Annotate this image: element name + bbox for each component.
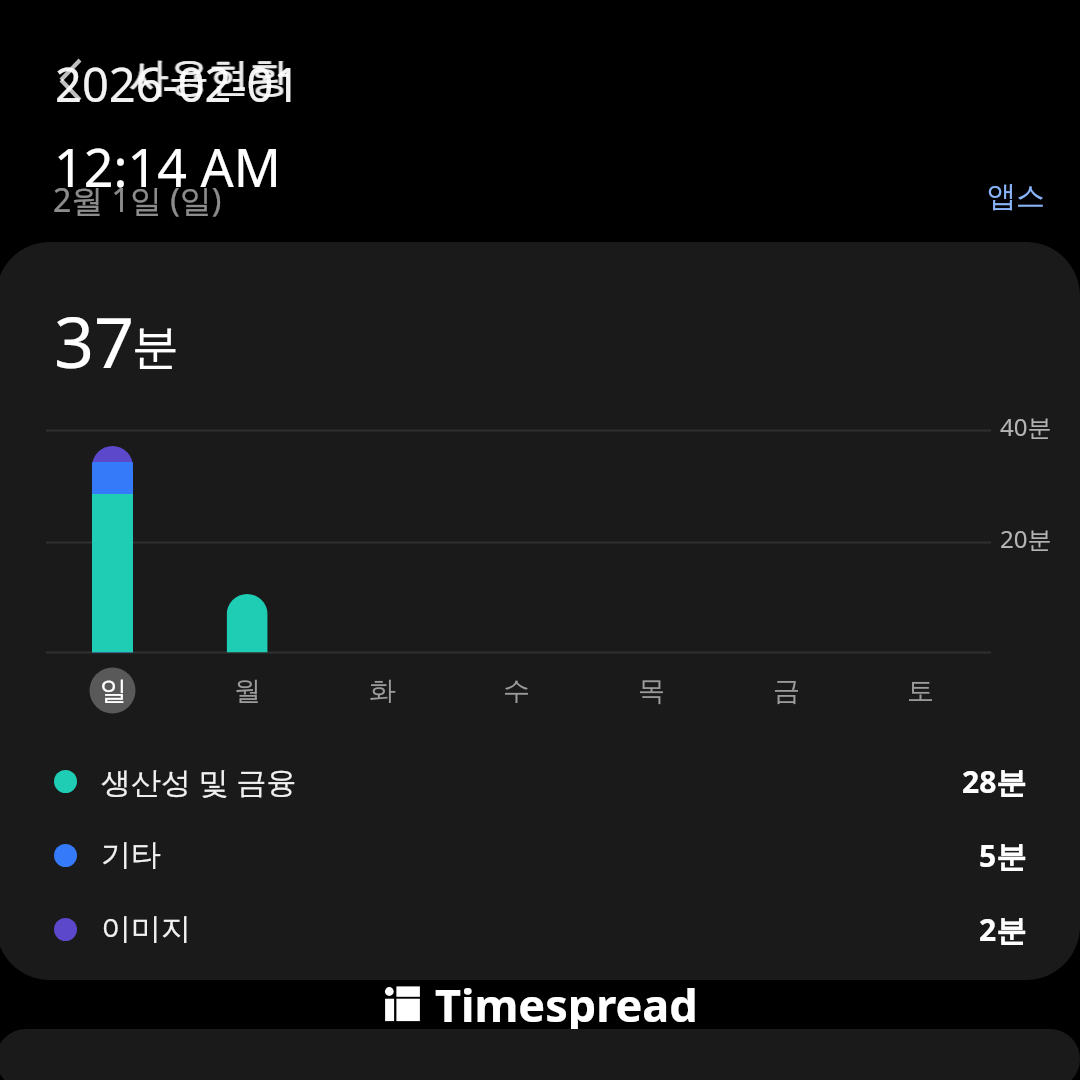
staticText: 이미지 <box>101 910 191 948</box>
button[interactable]: 기타 <box>0 818 1080 892</box>
button[interactable]: 일 <box>85 665 141 717</box>
staticText: 20분 <box>1000 522 1052 555</box>
staticText: 2026-02-01 <box>55 52 301 116</box>
button[interactable]: 화 <box>354 665 410 717</box>
button[interactable]: 이미지 <box>0 892 1080 966</box>
staticText: 5분 <box>979 835 1027 876</box>
staticText: 2월 1일 (일) <box>53 178 222 222</box>
button[interactable]: 월 <box>219 665 275 717</box>
button[interactable]: 앱스 <box>975 168 1057 225</box>
staticText: 일 <box>100 674 127 708</box>
staticText: 화 <box>369 674 396 708</box>
staticText: 사용현황 <box>130 52 290 102</box>
staticText: 수 <box>503 674 530 708</box>
staticText: 28분 <box>962 761 1027 802</box>
staticText: 12:14 AM <box>54 131 281 202</box>
button[interactable]: 목 <box>623 665 679 717</box>
button[interactable]: 토 <box>892 665 948 717</box>
staticText: 37 <box>54 293 135 388</box>
button[interactable]: 금 <box>758 665 814 717</box>
staticText: 기타 <box>101 836 161 874</box>
staticText: 사용현황 <box>129 52 289 102</box>
staticText: 생산성 및 금융 <box>101 761 297 802</box>
staticText: 목 <box>638 674 665 708</box>
staticText: 앱스 <box>987 178 1045 215</box>
staticText: 토 <box>907 674 934 708</box>
staticText: 사용현황 <box>128 52 288 102</box>
button[interactable]: 생산성 및 금융 <box>0 744 1080 818</box>
button[interactable]: 수 <box>488 665 544 717</box>
staticText: 2분 <box>979 909 1027 950</box>
button[interactable]: Back <box>33 52 109 128</box>
staticText: 40분 <box>1000 410 1052 443</box>
staticText: 월 <box>234 674 261 708</box>
staticText: 금 <box>773 674 800 708</box>
button[interactable]: Timespread <box>376 974 706 1030</box>
staticText: Timespread <box>435 974 698 1030</box>
staticText: 분 <box>132 318 179 377</box>
